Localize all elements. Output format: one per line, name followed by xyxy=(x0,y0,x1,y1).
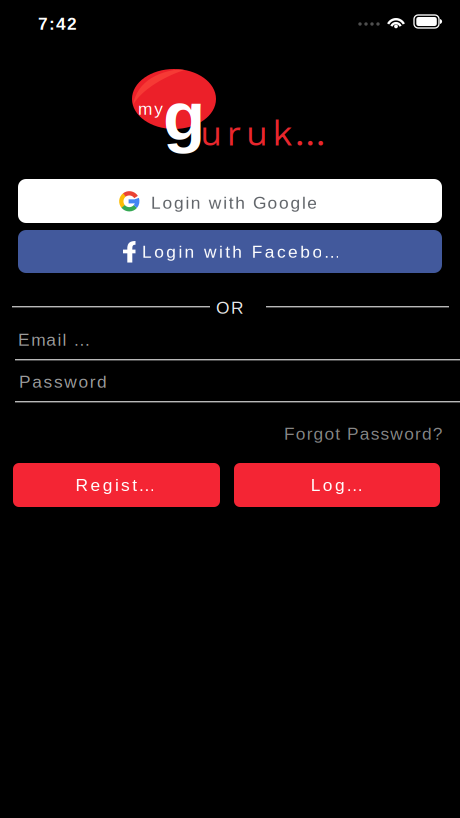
button[interactable]: Register xyxy=(13,463,220,507)
button[interactable]: Forgot Password? xyxy=(272,420,442,444)
staticText: 7:42 xyxy=(38,14,77,33)
staticText: Login with Google xyxy=(151,193,317,212)
staticText: my xyxy=(138,99,163,118)
staticText: Password xyxy=(19,372,107,391)
button[interactable]: Login with Facebook xyxy=(18,230,442,273)
staticText: Email ID xyxy=(18,330,93,349)
button[interactable]: Login with Google xyxy=(18,179,442,223)
staticText: Login xyxy=(311,475,363,495)
button[interactable]: Login xyxy=(234,463,440,507)
staticText: urukul xyxy=(200,112,334,154)
staticText: Forgot Password? xyxy=(284,424,443,443)
staticText: Register xyxy=(75,475,158,495)
staticText: OR xyxy=(216,298,244,317)
staticText: Login with Facebook xyxy=(142,242,346,261)
staticText: g xyxy=(163,77,205,154)
